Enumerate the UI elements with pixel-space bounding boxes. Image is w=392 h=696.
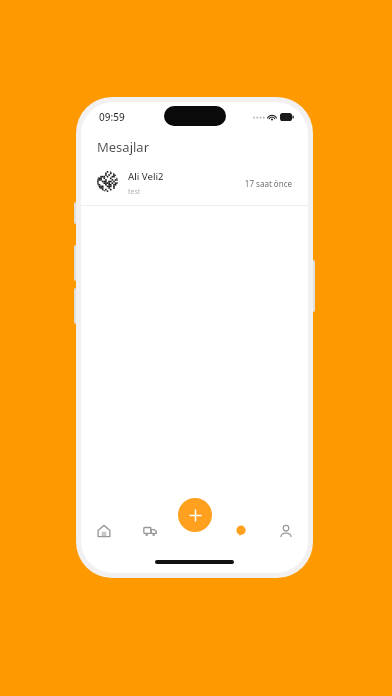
- button[interactable]: Profile: [263, 513, 308, 549]
- button[interactable]: Home: [81, 513, 127, 549]
- button[interactable]: New message: [178, 498, 212, 532]
- staticText: Mesajlar: [97, 138, 150, 156]
- button[interactable]: Ali Veli2: [81, 166, 308, 205]
- staticText: test: [128, 187, 141, 197]
- staticText: 17 saat önce: [244, 178, 292, 189]
- button[interactable]: Deliveries: [127, 513, 173, 549]
- button[interactable]: Messages: [218, 513, 263, 549]
- staticText: Ali Veli2: [128, 170, 164, 183]
- staticText: 09:59: [99, 110, 125, 124]
